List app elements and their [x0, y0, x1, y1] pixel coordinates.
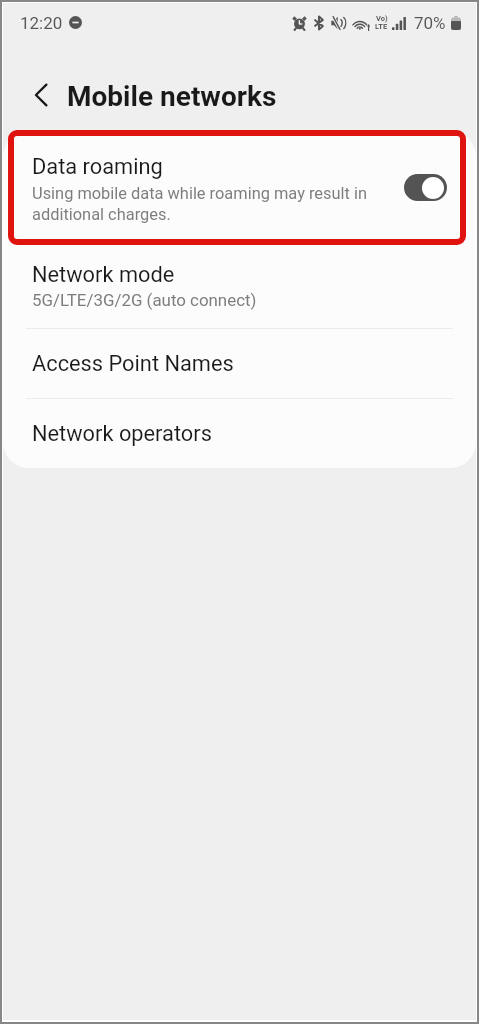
staticText: Using mobile data while roaming may resu… — [32, 182, 377, 224]
staticText: Network operators — [32, 421, 212, 447]
staticText: 70% — [414, 13, 446, 33]
button[interactable]: Data roaming toggle — [404, 174, 447, 201]
staticText: Data roaming — [32, 154, 163, 180]
button[interactable]: Access Point Names — [3, 329, 476, 398]
button[interactable]: Network mode — [3, 247, 476, 328]
staticText: LTE — [375, 23, 388, 31]
staticText: Vo) — [376, 15, 388, 23]
button[interactable]: Data roaming — [3, 131, 476, 247]
staticText: 5G/LTE/3G/2G (auto connect) — [32, 290, 257, 310]
button[interactable]: Network operators — [3, 399, 476, 468]
staticText: Access Point Names — [32, 351, 234, 377]
staticText: Network mode — [32, 262, 175, 288]
staticText: Mobile networks — [67, 80, 277, 113]
button[interactable]: Back — [22, 76, 59, 113]
staticText: 12:20 — [20, 13, 63, 33]
